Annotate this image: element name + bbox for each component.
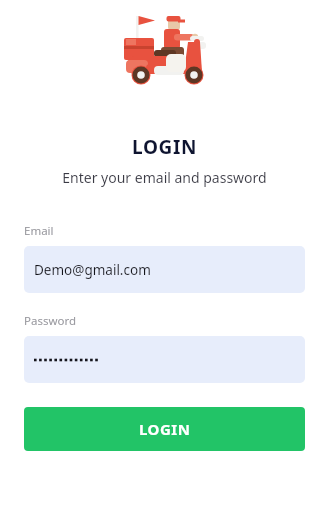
staticText: LOGIN xyxy=(132,134,197,160)
staticText: Enter your email and password xyxy=(62,168,267,187)
button[interactable] xyxy=(24,336,305,383)
staticText: LOGIN xyxy=(139,419,191,439)
staticText: Password xyxy=(24,313,77,329)
staticText: Email xyxy=(24,223,54,239)
staticText: Demo@gmail.com xyxy=(34,261,151,279)
button[interactable]: LOGIN xyxy=(24,407,305,451)
other: Delivery scooter xyxy=(110,6,220,92)
button[interactable]: Demo@gmail.com xyxy=(24,246,305,293)
